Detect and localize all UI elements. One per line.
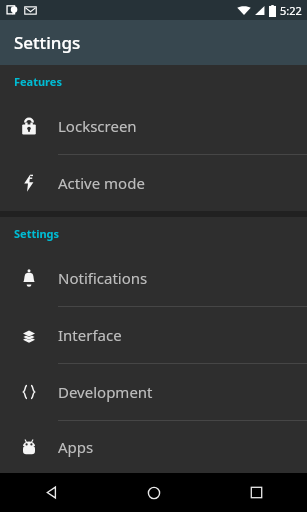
button[interactable]: Active mode [0,154,307,211]
button[interactable]: Interface [0,306,307,363]
staticText: Features [14,74,62,89]
button[interactable]: Notifications [0,249,307,306]
staticText: Settings [14,226,60,241]
button[interactable]: Development [0,363,307,420]
staticText: Active mode [58,173,145,193]
staticText: 5:22 [280,3,302,18]
staticText: Lockscreen [58,116,137,136]
button[interactable]: Back [0,473,103,512]
staticText: Interface [58,325,122,345]
staticText: Notifications [58,268,148,288]
button[interactable]: Recent apps [205,473,307,512]
button[interactable]: Apps [0,420,307,473]
staticText: Settings [14,31,81,54]
staticText: Apps [58,437,94,457]
button[interactable]: Home [103,473,205,512]
button[interactable]: Lockscreen [0,97,307,154]
staticText: Development [58,382,153,402]
